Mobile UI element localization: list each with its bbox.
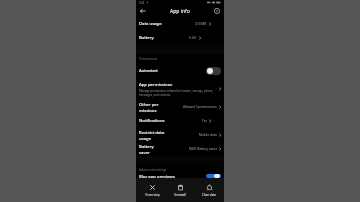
- staticText: App permissions: [139, 82, 173, 88]
- button[interactable]: Battery saver: [136, 142, 224, 156]
- button[interactable]: Other permissions: [136, 100, 224, 114]
- staticText: Battery saver: [139, 144, 164, 155]
- staticText: Uninstall: [174, 193, 186, 197]
- staticText: Data usage: [139, 21, 162, 27]
- staticText: Manage permissions related to location, …: [139, 89, 217, 97]
- staticText: Autostart: [139, 68, 206, 74]
- staticText: Allowed 3 permissions: [183, 105, 217, 109]
- staticText: Restrict data usage: [139, 130, 169, 141]
- staticText: 9:42: [139, 1, 145, 5]
- button[interactable]: Restrict data usage: [136, 128, 224, 142]
- staticText: Yes: [202, 119, 207, 123]
- staticText: Permissions: [139, 57, 158, 61]
- button[interactable]: Uninstall: [167, 178, 193, 202]
- button[interactable]: Back: [138, 6, 148, 16]
- staticText: 374 MB: [195, 22, 207, 26]
- staticText: Force stop: [145, 193, 160, 197]
- button[interactable]: Battery: [136, 31, 224, 45]
- staticText: MIUI Battery saver: [189, 147, 217, 151]
- button[interactable]: Force stop: [139, 178, 165, 202]
- staticText: App info: [170, 8, 190, 15]
- staticText: 0.4%: [189, 36, 197, 40]
- staticText: Clear data: [202, 193, 216, 197]
- button[interactable]: Data usage: [136, 17, 224, 31]
- staticText: Advanced settings: [139, 168, 167, 172]
- staticText: Battery: [139, 35, 154, 41]
- button[interactable]: Blur app previews: [136, 174, 224, 178]
- button[interactable]: Notifications: [136, 114, 224, 128]
- staticText: Notifications: [139, 118, 165, 124]
- staticText: Other permissions: [139, 102, 161, 113]
- staticText: Blur app previews: [139, 174, 206, 178]
- button[interactable]: Autostart: [136, 63, 224, 78]
- button[interactable]: Clear data: [196, 178, 222, 202]
- staticText: Mobile data: [199, 133, 217, 137]
- button[interactable]: App details: [212, 6, 222, 16]
- button[interactable]: App permissions: [136, 78, 224, 100]
